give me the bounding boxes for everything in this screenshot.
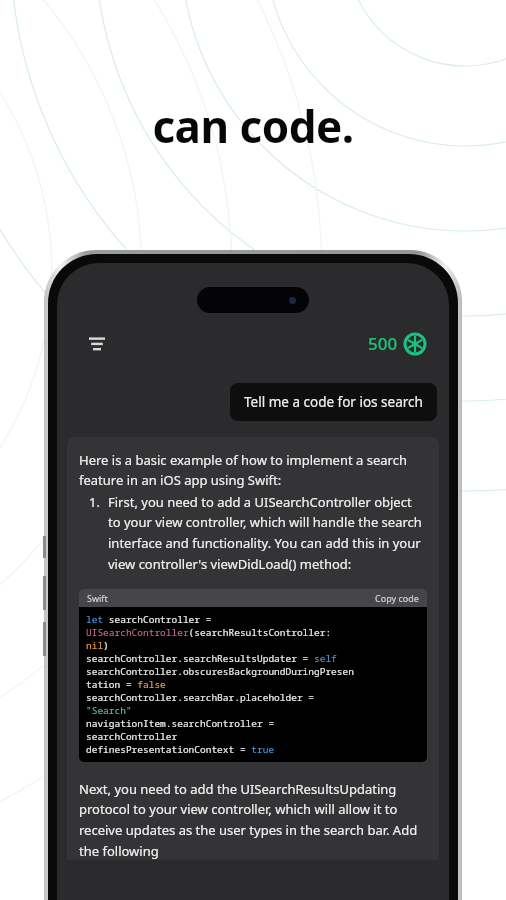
staticText: First, you need to add a UISearchControl… xyxy=(108,493,427,573)
staticText: Next, you need to add the UISearchResult… xyxy=(79,780,427,860)
button[interactable]: Menu xyxy=(81,327,113,359)
staticText: can code. xyxy=(0,96,506,156)
button[interactable]: 500 xyxy=(368,332,425,355)
staticText: Here is a basic example of how to implem… xyxy=(79,451,427,489)
staticText: Copy code xyxy=(375,592,419,604)
staticText: Swift xyxy=(87,592,108,604)
button[interactable]: Tell me a code for ios search xyxy=(230,383,437,421)
button[interactable]: Here is a basic example of how to implem… xyxy=(67,437,439,860)
other: Tokens xyxy=(405,334,425,354)
staticText: 1. xyxy=(89,493,100,511)
staticText: 500 xyxy=(368,332,398,355)
button[interactable]: Copy code xyxy=(375,592,419,604)
staticText: let searchController = UISearchControlle… xyxy=(86,613,354,756)
staticText: Tell me a code for ios search xyxy=(244,393,423,411)
